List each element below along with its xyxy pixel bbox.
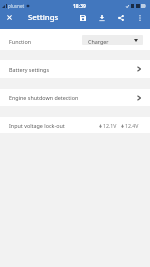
staticText: Settings (28, 12, 59, 23)
staticText: Input voltage lock-out (9, 122, 65, 129)
button[interactable]: Input voltage lock-out (0, 117, 150, 133)
staticText: Battery settings (9, 66, 49, 73)
staticText: 12.1V (103, 122, 117, 129)
staticText: Charger (88, 38, 109, 45)
button[interactable]: Engine shutdown detection (0, 89, 150, 106)
button[interactable]: Download (92, 12, 111, 23)
staticText: 12.4V (125, 122, 139, 129)
button[interactable]: Function dropdown (82, 35, 143, 45)
button[interactable]: Save (73, 12, 92, 23)
staticText: Function (9, 38, 31, 45)
staticText: Engine shutdown detection (9, 94, 79, 101)
staticText: 18:39 (73, 3, 86, 10)
button[interactable]: Close (0, 12, 19, 23)
button[interactable]: More options (130, 12, 149, 23)
button[interactable]: Share (111, 12, 130, 23)
button[interactable]: Battery settings (0, 60, 150, 78)
staticText: plusnet (8, 3, 25, 9)
button[interactable]: Function (0, 29, 150, 50)
